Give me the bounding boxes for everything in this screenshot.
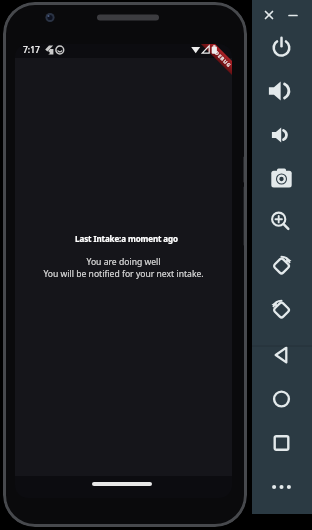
button[interactable]: [260, 69, 304, 113]
button[interactable]: [260, 333, 304, 377]
staticText: DEBUG: [213, 50, 232, 70]
button[interactable]: [285, 7, 301, 23]
staticText: Last Intake:a moment ago: [75, 233, 178, 244]
button[interactable]: [260, 25, 304, 69]
button[interactable]: [260, 200, 304, 244]
staticText: You are doing well You will be notified …: [43, 256, 204, 280]
button[interactable]: [260, 465, 304, 509]
button[interactable]: [260, 157, 304, 201]
button[interactable]: [261, 7, 277, 23]
button[interactable]: [260, 113, 304, 157]
button[interactable]: [260, 243, 304, 287]
button[interactable]: [260, 377, 304, 421]
button[interactable]: [260, 287, 304, 331]
button[interactable]: [260, 421, 304, 465]
staticText: 7:17: [23, 44, 40, 56]
